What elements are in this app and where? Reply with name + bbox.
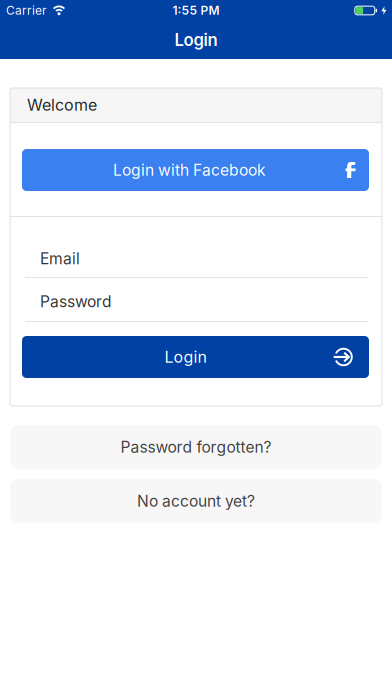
staticText: Welcome xyxy=(27,95,97,115)
staticText: Password xyxy=(40,292,112,311)
button[interactable]: Login xyxy=(22,336,369,378)
staticText: Login with Facebook xyxy=(113,161,266,179)
staticText: Login xyxy=(164,347,206,367)
button[interactable]: Password forgotten? xyxy=(10,425,382,469)
staticText: 1:55 PM xyxy=(172,3,219,18)
staticText: No account yet? xyxy=(137,492,255,510)
staticText: Email xyxy=(40,249,80,268)
staticText: Login xyxy=(174,30,217,50)
staticText: Password forgotten? xyxy=(120,438,271,456)
button[interactable]: Password xyxy=(10,278,382,321)
staticText: Carrier xyxy=(6,3,47,18)
button[interactable]: No account yet? xyxy=(10,479,382,523)
button[interactable]: Email xyxy=(10,217,382,277)
button[interactable]: Login with Facebook xyxy=(22,149,369,191)
